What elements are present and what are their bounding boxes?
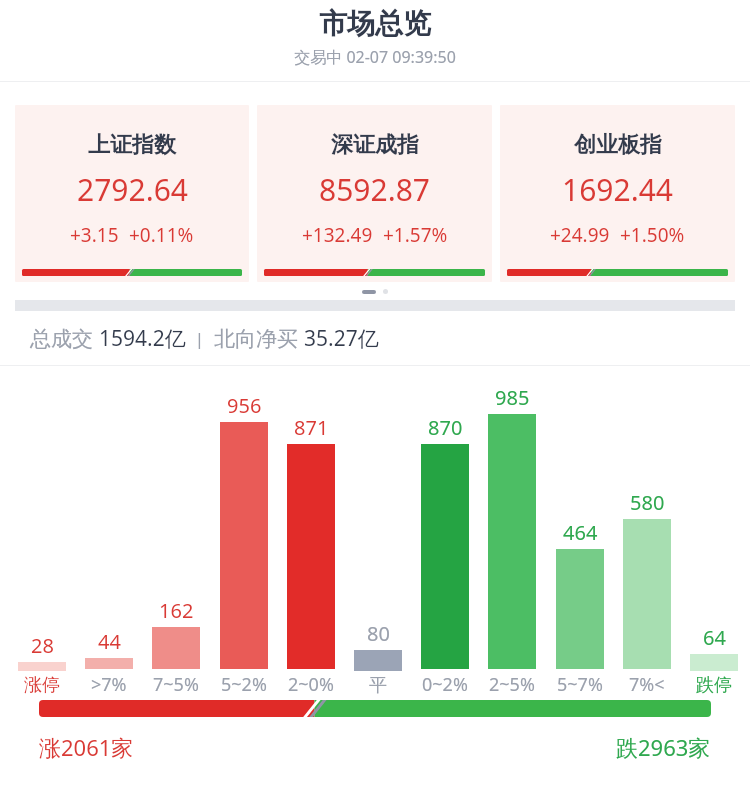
staticText: 580 — [630, 489, 665, 516]
staticText: 35.27亿 — [304, 324, 379, 353]
staticText: 涨停 — [24, 674, 60, 697]
staticText: 870 — [428, 414, 463, 441]
staticText: 7~5% — [153, 672, 199, 697]
staticText: 深证成指 — [331, 131, 419, 159]
staticText: 871 — [294, 414, 329, 441]
staticText: 市场总览 — [0, 6, 750, 41]
staticText: +1.50% — [620, 222, 685, 248]
staticText: 交易中 02-07 09:39:50 — [0, 46, 750, 68]
staticText: 1692.44 — [562, 169, 673, 210]
staticText: 5~2% — [221, 672, 267, 697]
staticText: 5~7% — [557, 672, 603, 697]
staticText: +24.99 — [550, 222, 610, 248]
staticText: 7%< — [629, 672, 665, 697]
staticText: 8592.87 — [319, 169, 430, 210]
staticText: 162 — [159, 597, 194, 624]
button[interactable]: 上证指数 — [15, 105, 249, 282]
staticText: 跌停 — [696, 674, 732, 697]
button[interactable]: 总成交 — [0, 311, 750, 365]
staticText: 985 — [495, 384, 530, 411]
staticText: 总成交 — [30, 324, 99, 353]
staticText: +132.49 — [302, 222, 373, 248]
staticText: 2~0% — [288, 672, 334, 697]
staticText: 0~2% — [422, 672, 468, 697]
staticText: +0.11% — [129, 222, 194, 248]
staticText: 28 — [31, 632, 54, 659]
staticText: 2~5% — [489, 672, 535, 697]
button[interactable]: 创业板指 — [500, 105, 735, 282]
staticText: +3.15 — [70, 222, 119, 248]
staticText: 创业板指 — [574, 131, 662, 159]
staticText: 跌2963家 — [616, 732, 711, 762]
staticText: 464 — [563, 519, 598, 546]
staticText: 1594.2亿 — [99, 324, 186, 353]
button[interactable]: 深证成指 — [257, 105, 492, 282]
button[interactable]: 28 — [0, 366, 750, 700]
staticText: 2792.64 — [77, 169, 188, 210]
staticText: 80 — [367, 620, 390, 647]
button[interactable]: 涨跌家数比例 — [39, 700, 711, 717]
staticText: | — [186, 327, 214, 350]
staticText: +1.57% — [383, 222, 448, 248]
staticText: 44 — [98, 628, 121, 655]
staticText: 上证指数 — [88, 131, 176, 159]
staticText: >7% — [91, 672, 127, 697]
staticText: 北向净买 — [214, 324, 304, 353]
staticText: 64 — [703, 624, 726, 651]
staticText: 956 — [227, 392, 262, 419]
staticText: 平 — [369, 674, 387, 697]
staticText: 涨2061家 — [39, 732, 134, 762]
